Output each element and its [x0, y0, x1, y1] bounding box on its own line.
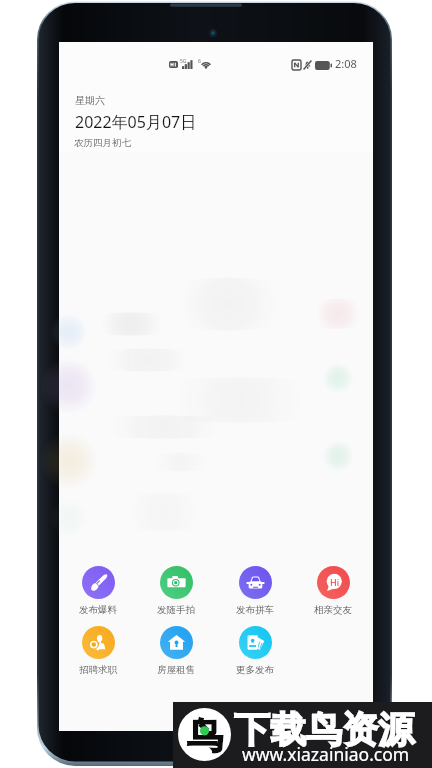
staticText: 发布拼车 [236, 604, 274, 616]
staticText: 2022年05月07日 [75, 111, 197, 133]
button[interactable]: 房屋租售 [137, 626, 215, 676]
staticText: 发布爆料 [79, 604, 117, 616]
button[interactable]: 发布拼车 [216, 566, 294, 616]
staticText: 更多发布 [236, 664, 274, 676]
button[interactable]: Hi [294, 566, 372, 616]
staticText: 发随手拍 [157, 604, 195, 616]
staticText: 5G [180, 58, 187, 65]
staticText: 招聘求职 [79, 664, 117, 676]
button[interactable]: 更多发布 [216, 626, 294, 676]
button[interactable]: 发布爆料 [59, 566, 137, 616]
staticText: 2:08 [335, 56, 357, 71]
staticText: 6 [198, 58, 201, 65]
staticText: 农历四月初七 [74, 137, 131, 149]
staticText: 下载鸟资源 [234, 707, 414, 752]
staticText: 星期六 [75, 94, 105, 107]
staticText: 房屋租售 [157, 664, 195, 676]
staticText: Hi [330, 576, 340, 588]
staticText: www.xiazainiao.com [242, 742, 410, 766]
staticText: 鸟 [187, 713, 223, 758]
staticText: 相亲交友 [314, 604, 352, 616]
button[interactable]: 发随手拍 [137, 566, 215, 616]
button[interactable]: 招聘求职 [59, 626, 137, 676]
